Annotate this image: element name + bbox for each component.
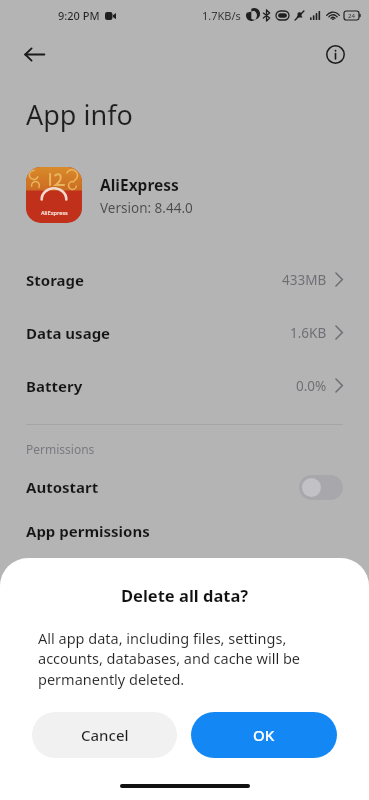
staticText: All app data, including files, settings,… (38, 628, 331, 690)
staticText: AliExpress (41, 209, 68, 216)
staticText: AliExpress (100, 174, 179, 195)
staticText: Battery (26, 376, 83, 396)
button[interactable]: Back (14, 34, 54, 74)
staticText: 433MB (282, 271, 327, 289)
staticText: App permissions (26, 521, 150, 541)
button[interactable]: Cancel (32, 712, 177, 758)
staticText: 1.6KB (290, 324, 327, 342)
staticText: Storage (26, 270, 84, 290)
staticText: Data usage (26, 323, 111, 343)
button[interactable]: Data usage (0, 306, 369, 359)
staticText: OK (253, 725, 275, 745)
button[interactable]: OK (191, 712, 337, 758)
button[interactable]: Storage (0, 253, 369, 306)
staticText: 24 (348, 12, 355, 20)
button[interactable]: Battery (0, 359, 369, 412)
button[interactable]: Autostart (0, 467, 369, 507)
staticText: Version: 8.44.0 (100, 199, 193, 217)
staticText: Permissions (26, 441, 95, 457)
staticText: App info (26, 96, 133, 133)
staticText: Cancel (81, 725, 129, 745)
button[interactable]: App details info (315, 34, 355, 74)
staticText: Autostart (26, 477, 99, 497)
staticText: 9:20 PM (58, 8, 100, 23)
staticText: 1.7KB/s (202, 8, 241, 23)
staticText: Delete all data? (121, 584, 249, 606)
staticText: 0.0% (296, 377, 327, 395)
